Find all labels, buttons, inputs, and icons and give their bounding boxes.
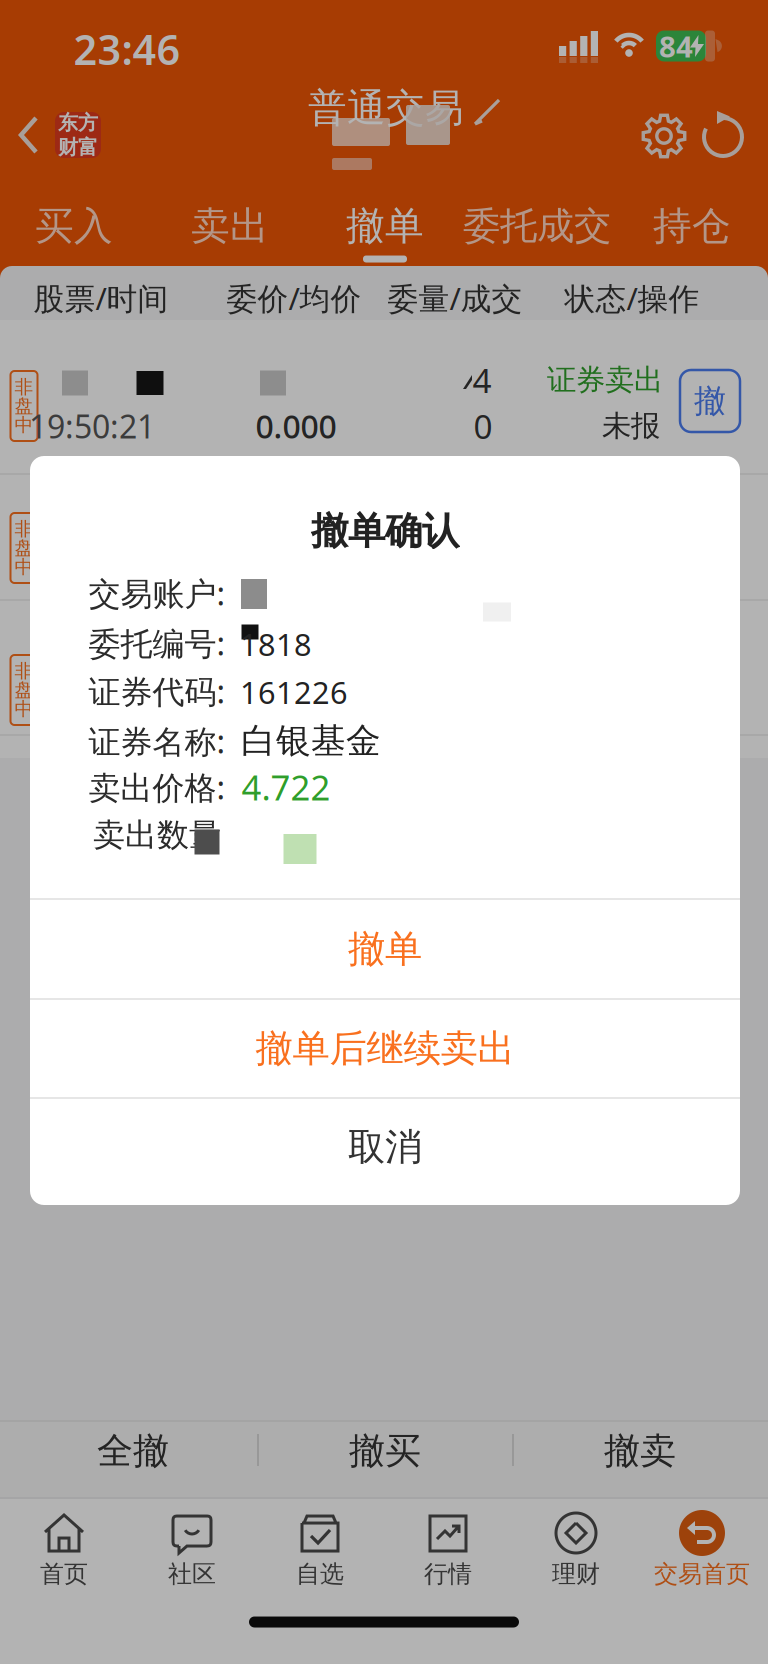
- button[interactable]: 交易首页: [638, 1500, 766, 1612]
- staticText: 交易首页: [654, 1559, 750, 1589]
- button[interactable]: 撤买: [265, 1418, 505, 1484]
- button[interactable]: Refresh: [695, 108, 751, 164]
- staticText: 84: [659, 26, 693, 65]
- staticText: 委托成交: [463, 203, 611, 249]
- staticText: 撤单确认: [311, 508, 459, 554]
- staticText: 撤单: [348, 926, 422, 972]
- staticText: 委量/成交: [387, 278, 522, 318]
- staticText: 0.000: [255, 405, 336, 447]
- button[interactable]: 普通交易: [257, 70, 517, 180]
- staticText: 中: [14, 413, 33, 436]
- staticText: 全撤: [97, 1429, 169, 1473]
- staticText: 证券名称:: [88, 720, 225, 762]
- staticText: 理财: [552, 1559, 600, 1589]
- staticText: 证券卖出: [547, 362, 663, 398]
- button[interactable]: 撤卖: [520, 1418, 760, 1484]
- staticText: 财富: [58, 135, 98, 160]
- staticText: 中: [14, 555, 33, 578]
- staticText: 状态/操作: [564, 278, 699, 318]
- button[interactable]: 全撤: [13, 1418, 253, 1484]
- staticText: 股票/时间: [33, 278, 168, 318]
- staticText: 撤: [694, 381, 726, 421]
- staticText: 普通交易: [308, 84, 464, 132]
- staticText: 首页: [40, 1559, 88, 1589]
- staticText: 卖出价格:: [88, 766, 225, 808]
- staticText: 4: [472, 358, 491, 402]
- button[interactable]: 撤: [680, 370, 740, 432]
- staticText: 委托编号:: [88, 622, 225, 664]
- button[interactable]: Back: [9, 105, 49, 165]
- button[interactable]: 撤单后继续卖出: [30, 1000, 740, 1097]
- staticText: 非: [14, 376, 33, 398]
- staticText: 白银基金: [241, 720, 381, 762]
- staticText: 23:46: [73, 22, 180, 76]
- staticText: 盘: [14, 536, 33, 559]
- staticText: 自选: [296, 1559, 344, 1589]
- staticText: 0: [473, 404, 492, 448]
- staticText: 盘: [14, 394, 33, 417]
- staticText: 取消: [348, 1124, 422, 1170]
- staticText: 1818: [240, 624, 312, 664]
- button[interactable]: 撤单: [30, 900, 740, 997]
- staticText: 4.722: [241, 764, 330, 810]
- staticText: 证券代码:: [88, 670, 225, 712]
- staticText: 非: [14, 518, 33, 540]
- button[interactable]: Settings: [636, 108, 692, 164]
- staticText: 未报: [602, 408, 660, 444]
- button[interactable]: 首页: [4, 1500, 124, 1612]
- button[interactable]: 社区: [132, 1500, 252, 1612]
- staticText: 撤单后继续卖出: [255, 1026, 514, 1071]
- staticText: 交易账户:: [88, 572, 225, 614]
- staticText: 卖出数量: [93, 815, 221, 855]
- staticText: 19:50:21: [29, 405, 155, 447]
- button[interactable]: 卖出: [191, 196, 269, 256]
- staticText: 社区: [168, 1559, 216, 1589]
- staticText: 持仓: [653, 202, 731, 250]
- staticText: 161226: [240, 672, 348, 712]
- button[interactable]: 撤单: [346, 196, 424, 256]
- staticText: 非: [14, 660, 33, 682]
- staticText: 盘: [14, 678, 33, 701]
- staticText: 行情: [424, 1559, 472, 1589]
- button[interactable]: 行情: [388, 1500, 508, 1612]
- staticText: 撤卖: [604, 1429, 676, 1473]
- staticText: 中: [14, 697, 33, 720]
- staticText: 买入: [35, 202, 113, 250]
- staticText: 卖出: [191, 202, 269, 250]
- staticText: 撤买: [349, 1429, 421, 1473]
- staticText: 东方: [58, 110, 98, 135]
- button[interactable]: 取消: [30, 1098, 740, 1195]
- button[interactable]: 理财: [516, 1500, 636, 1612]
- button[interactable]: 自选: [260, 1500, 380, 1612]
- button[interactable]: 持仓: [653, 196, 731, 256]
- staticText: 委价/均价: [226, 278, 361, 318]
- staticText: 撤单: [346, 202, 424, 250]
- button[interactable]: 买入: [35, 196, 113, 256]
- button[interactable]: 委托成交: [463, 196, 611, 256]
